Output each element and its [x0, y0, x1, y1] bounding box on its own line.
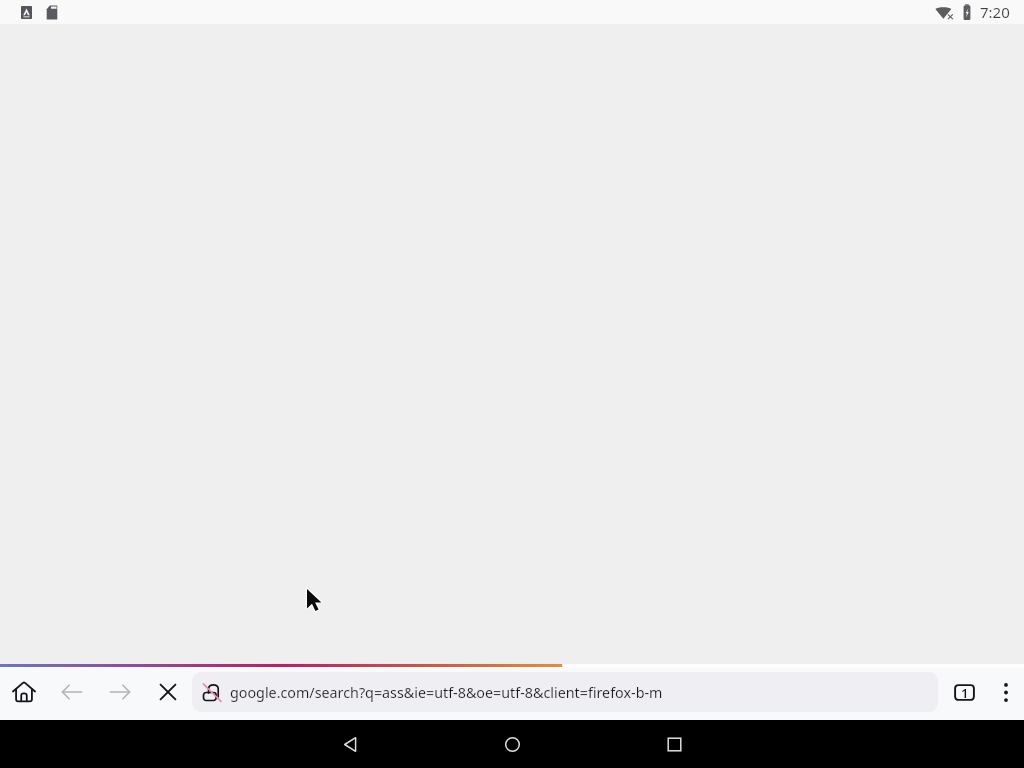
button[interactable]: Forward [96, 668, 144, 716]
staticText: 7:20 [980, 2, 1010, 22]
button[interactable]: Stop loading [144, 668, 192, 716]
button[interactable]: Recents [650, 720, 698, 768]
staticText: google.com/search?q=ass&ie=utf-8&oe=utf-… [230, 683, 663, 702]
button[interactable]: google.com/search?q=ass&ie=utf-8&oe=utf-… [192, 672, 938, 712]
button[interactable]: Menu [987, 670, 1024, 714]
button[interactable]: Home [488, 720, 536, 768]
button[interactable]: Back [326, 720, 374, 768]
staticText: 1 [961, 684, 969, 701]
button[interactable]: Home [0, 668, 48, 716]
button[interactable]: Tabs [944, 672, 984, 712]
button[interactable]: Back [48, 668, 96, 716]
